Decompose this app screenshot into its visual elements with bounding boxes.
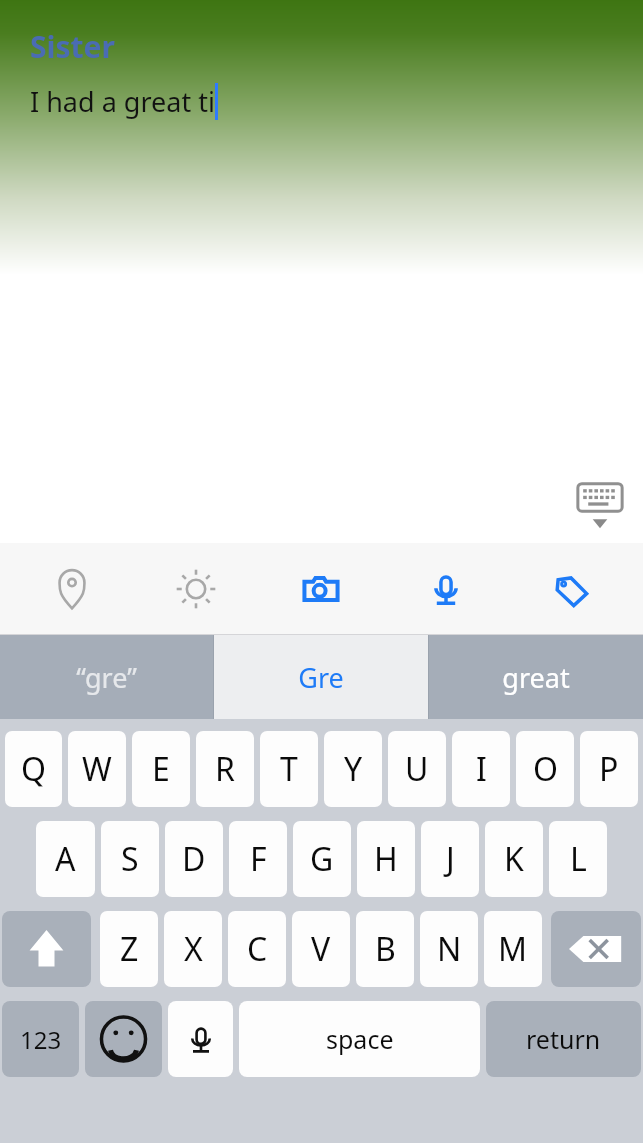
staticText: A [55,837,76,881]
staticText: C [247,927,268,971]
staticText: O [533,747,558,791]
staticText: Q [21,747,46,791]
staticText: Sister [30,26,115,67]
button[interactable]: Camera [258,543,383,635]
staticText: K [504,837,524,881]
staticText: X [184,927,203,971]
staticText: great [502,659,570,696]
button[interactable]: E [132,731,190,807]
button[interactable]: Brightness [134,543,258,635]
staticText: I had a great ti [30,83,215,120]
button[interactable]: K [485,821,543,897]
staticText: 123 [20,1023,62,1056]
staticText: H [374,837,398,881]
staticText: R [215,747,235,791]
button[interactable]: Emoji [85,1001,162,1077]
button[interactable]: H [357,821,415,897]
button[interactable]: I [452,731,510,807]
staticText: M [498,927,528,971]
button[interactable]: O [516,731,574,807]
button[interactable]: “gre” [0,635,213,719]
button[interactable]: J [421,821,479,897]
staticText: J [446,837,455,881]
staticText: S [121,837,139,881]
staticText: I [476,747,487,791]
staticText: “gre” [76,659,137,696]
button[interactable]: Microphone [383,543,508,635]
button[interactable]: return [486,1001,641,1077]
button[interactable]: B [356,911,414,987]
staticText: Z [120,927,139,971]
staticText: T [280,747,298,791]
staticText: return [526,1022,601,1056]
button[interactable]: W [68,731,126,807]
button[interactable]: Y [324,731,382,807]
staticText: U [405,747,429,791]
button[interactable]: space [239,1001,480,1077]
button[interactable]: X [164,911,222,987]
button[interactable]: F [229,821,287,897]
button[interactable]: Hide keyboard [573,481,627,535]
button[interactable]: Z [100,911,158,987]
button[interactable]: C [228,911,286,987]
button[interactable]: U [388,731,446,807]
staticText: N [437,927,462,971]
staticText: Y [344,747,363,791]
button[interactable]: Tag [508,543,633,635]
staticText: V [311,927,331,971]
staticText: P [599,747,619,791]
button[interactable]: Q [5,731,62,807]
button[interactable]: N [420,911,478,987]
button[interactable]: Shift [2,911,91,987]
button[interactable]: R [196,731,254,807]
staticText: F [250,837,267,881]
button[interactable]: 123 [2,1001,79,1077]
button[interactable]: Gre [214,635,428,719]
button[interactable]: S [101,821,159,897]
staticText: space [326,1022,394,1056]
button[interactable]: A [36,821,95,897]
button[interactable]: Location [10,543,134,635]
button[interactable]: Backspace [551,911,641,987]
staticText: D [182,837,206,881]
staticText: Gre [298,659,344,696]
staticText: W [82,747,112,791]
staticText: L [570,837,587,881]
button[interactable]: G [293,821,351,897]
staticText: G [310,837,334,881]
staticText: B [375,927,396,971]
button[interactable]: D [165,821,223,897]
button[interactable]: L [549,821,607,897]
button[interactable]: great [429,635,643,719]
button[interactable]: M [484,911,542,987]
button[interactable]: Dictation [168,1001,233,1077]
staticText: E [152,747,170,791]
button[interactable]: T [260,731,318,807]
button[interactable]: V [292,911,350,987]
button[interactable]: P [580,731,638,807]
